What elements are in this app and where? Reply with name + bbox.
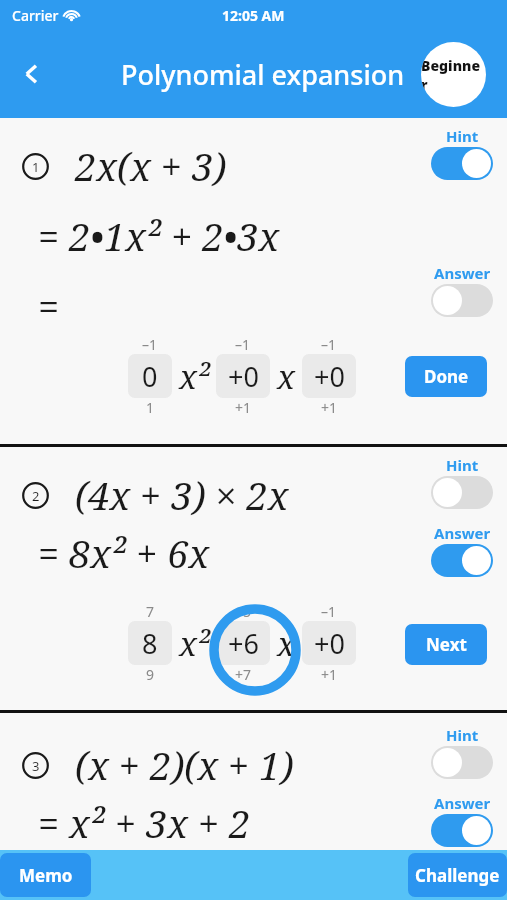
staticText: +0 (228, 358, 259, 395)
staticText: Memo (19, 864, 73, 887)
button[interactable]: Answer on (431, 544, 493, 577)
staticText: Done (424, 365, 469, 388)
button[interactable]: +6 (216, 621, 270, 665)
button[interactable]: Answer on (431, 814, 493, 847)
staticText: 8 (142, 625, 158, 662)
staticText: +7 (235, 665, 252, 684)
staticText: Hint (446, 455, 479, 475)
button[interactable]: Memo (0, 853, 91, 897)
staticText: +0 (314, 358, 345, 395)
staticText: x² (179, 354, 211, 399)
button[interactable]: Answer off (431, 284, 493, 317)
button[interactable]: Hint off (431, 476, 493, 509)
staticText: Challenge (415, 864, 500, 887)
staticText: –1 (142, 335, 158, 354)
staticText: 1 (146, 398, 155, 417)
button[interactable]: Next (405, 624, 487, 665)
staticText: = 8x² + 6x (38, 527, 210, 579)
button[interactable]: 0 (128, 354, 172, 398)
staticText: +1 (235, 398, 252, 417)
staticText: –1 (321, 335, 337, 354)
staticText: Beginner (421, 56, 486, 94)
staticText: x (277, 621, 296, 666)
staticText: +1 (321, 398, 338, 417)
button[interactable]: Hint off (431, 746, 493, 779)
staticText: +1 (321, 665, 338, 684)
staticText: (4x + 3) × 2x (75, 469, 289, 521)
staticText: 1 (32, 158, 40, 176)
staticText: x² (179, 621, 211, 666)
button[interactable]: +0 (216, 354, 270, 398)
button[interactable]: Back (10, 52, 54, 96)
staticText: = 2•1x² + 2•3x (38, 210, 280, 262)
staticText: 9 (146, 665, 155, 684)
staticText: +5 (235, 602, 252, 621)
staticText: 2x(x + 3) (75, 140, 227, 192)
staticText: = (38, 280, 60, 332)
button[interactable]: +0 (302, 621, 356, 665)
button[interactable]: Hint on (431, 147, 493, 180)
staticText: 12:05 AM (222, 6, 285, 25)
staticText: +6 (228, 625, 259, 662)
staticText: x (277, 354, 296, 399)
staticText: 3 (32, 757, 40, 775)
staticText: Answer (434, 793, 491, 813)
staticText: Next (426, 633, 467, 656)
button[interactable]: Challenge (408, 853, 507, 897)
staticText: Polynomial expansion (121, 56, 405, 93)
staticText: 7 (146, 602, 155, 621)
staticText: –1 (321, 602, 337, 621)
staticText: 0 (142, 358, 158, 395)
button[interactable]: Done (405, 356, 487, 397)
button[interactable]: +0 (302, 354, 356, 398)
staticText: Carrier (12, 6, 59, 25)
button[interactable]: Beginner (421, 42, 486, 107)
staticText: Answer (434, 263, 491, 283)
staticText: 2 (32, 487, 40, 505)
staticText: Hint (446, 725, 479, 745)
staticText: –1 (235, 335, 251, 354)
staticText: Answer (434, 523, 491, 543)
staticText: = x² + 3x + 2 (38, 797, 251, 849)
staticText: (x + 2)(x + 1) (75, 739, 294, 791)
button[interactable]: 8 (128, 621, 172, 665)
staticText: Hint (446, 126, 479, 146)
staticText: +0 (314, 625, 345, 662)
